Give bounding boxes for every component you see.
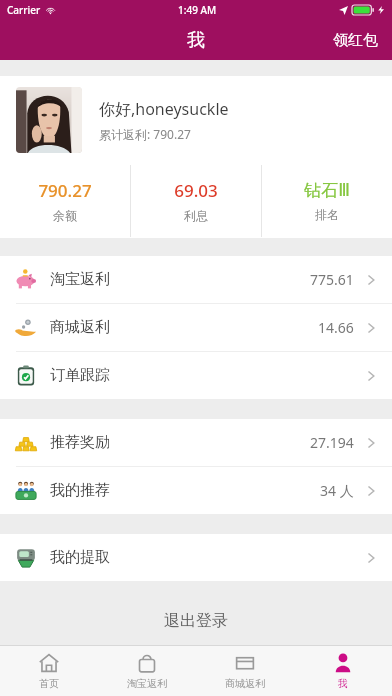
staticText: 34 人 (320, 481, 354, 500)
staticText: 利息 (184, 208, 208, 223)
staticText: 790.27 (38, 179, 92, 202)
button[interactable]: 领红包 (319, 20, 392, 60)
staticText: 首页 (39, 677, 59, 690)
staticText: Carrier (7, 3, 41, 17)
staticText: 淘宝返利 (50, 270, 110, 289)
staticText: 排名 (315, 207, 339, 222)
button[interactable]: 我的推荐 (0, 467, 392, 514)
button[interactable]: 我 (294, 646, 392, 696)
staticText: 订单跟踪 (50, 366, 110, 385)
button[interactable]: 商城返利 (0, 304, 392, 351)
button[interactable]: 790.27 (0, 164, 130, 238)
button[interactable]: 69.03 (131, 164, 261, 238)
staticText: 退出登录 (164, 611, 228, 631)
button[interactable]: 商城返利 (196, 646, 294, 696)
staticText: 商城返利 (50, 318, 110, 337)
staticText: 我 (338, 677, 348, 690)
button[interactable]: 推荐奖励 (0, 419, 392, 466)
button[interactable]: 退出登录 (0, 597, 392, 645)
button[interactable]: 订单跟踪 (0, 352, 392, 399)
button[interactable]: 淘宝返利 (98, 646, 196, 696)
staticText: 27.194 (310, 433, 354, 452)
staticText: 1:49 AM (178, 3, 217, 17)
staticText: 推荐奖励 (50, 433, 110, 452)
staticText: 钻石Ⅲ (304, 180, 350, 201)
button[interactable]: 你好,honeysuckle (0, 76, 392, 164)
staticText: 775.61 (310, 270, 354, 289)
staticText: 我的推荐 (50, 481, 110, 500)
button[interactable]: 钻石Ⅲ (262, 164, 392, 238)
staticText: 累计返利: 790.27 (99, 126, 191, 142)
staticText: 你好,honeysuckle (99, 98, 229, 120)
staticText: 我的提取 (50, 548, 110, 567)
staticText: 14.66 (318, 318, 354, 337)
staticText: 余额 (53, 208, 77, 223)
staticText: 我 (187, 29, 205, 52)
button[interactable]: 首页 (0, 646, 98, 696)
staticText: 69.03 (174, 179, 218, 202)
staticText: 淘宝返利 (127, 677, 167, 690)
button[interactable]: 淘宝返利 (0, 256, 392, 303)
staticText: 商城返利 (225, 677, 265, 690)
staticText: 领红包 (333, 31, 378, 50)
button[interactable]: 我的提取 (0, 534, 392, 581)
